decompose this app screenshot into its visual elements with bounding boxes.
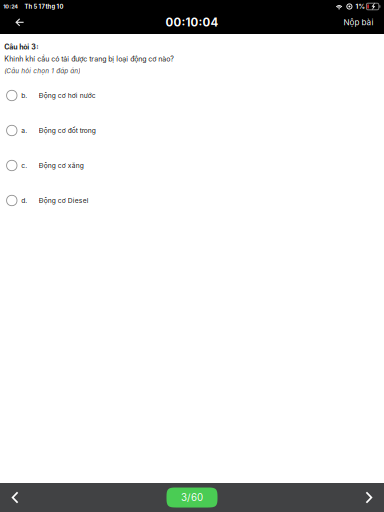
staticText: 10:24 [3, 3, 18, 10]
button[interactable]: Nộp bài [333, 13, 384, 34]
button[interactable]: 3/60 [166, 487, 217, 507]
staticText: b. [21, 91, 27, 100]
staticText: a. [21, 126, 27, 135]
staticText: d. [21, 196, 27, 205]
button[interactable]: c. [0, 148, 384, 183]
staticText: c. [21, 161, 27, 170]
staticText: Động cơ xăng [39, 161, 84, 170]
button[interactable]: Previous question [0, 483, 30, 512]
staticText: Động cơ Diesel [39, 196, 89, 205]
staticText: Động cơ đốt trong [39, 126, 96, 135]
button[interactable]: a. [0, 113, 384, 148]
staticText: Động cơ hơi nước [39, 91, 96, 100]
button[interactable]: Back [0, 13, 33, 34]
staticText: 00:10:04 [165, 15, 218, 29]
staticText: Nộp bài [343, 17, 373, 27]
button[interactable]: d. [0, 183, 384, 218]
button[interactable]: b. [0, 78, 384, 113]
staticText: Th 5 17 thg 10 [24, 3, 63, 10]
button[interactable]: Next question [354, 483, 384, 512]
staticText: Khinh khí cầu có tải được trang bị loại … [4, 55, 174, 63]
staticText: 1% [355, 3, 364, 10]
staticText: 3/60 [181, 492, 203, 503]
staticText: Câu hỏi 3: [4, 43, 38, 51]
staticText: (Câu hỏi chọn 1 đáp án) [4, 67, 80, 75]
